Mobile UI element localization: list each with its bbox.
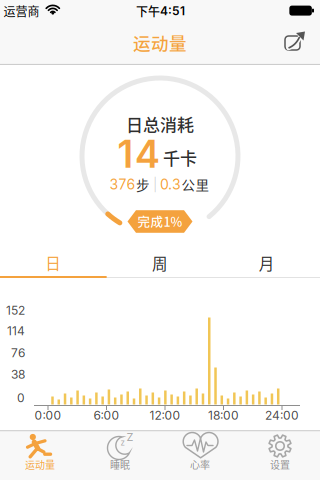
button[interactable]: 心率 bbox=[160, 431, 240, 480]
staticText: 公里 bbox=[181, 175, 209, 194]
staticText: 下午 bbox=[136, 2, 160, 20]
button[interactable]: 月 bbox=[214, 249, 320, 277]
button[interactable] bbox=[279, 27, 311, 59]
staticText: 步 bbox=[136, 175, 150, 194]
staticText: 376 bbox=[109, 176, 135, 193]
staticText: 日 bbox=[45, 252, 61, 274]
staticText: 运动量 bbox=[133, 30, 187, 55]
staticText: 14 bbox=[117, 132, 160, 176]
button[interactable]: 日 bbox=[0, 249, 106, 277]
button[interactable]: 设置 bbox=[240, 431, 320, 480]
staticText: 6:00 bbox=[93, 408, 119, 423]
button[interactable]: z bbox=[80, 431, 160, 480]
staticText: | bbox=[153, 177, 157, 192]
staticText: 76 bbox=[11, 346, 25, 360]
staticText: 0.3 bbox=[160, 176, 181, 193]
staticText: 周 bbox=[152, 252, 168, 274]
staticText: z bbox=[120, 438, 124, 447]
staticText: 睡眠 bbox=[110, 457, 130, 472]
staticText: 0 bbox=[17, 391, 25, 405]
staticText: 心率 bbox=[190, 457, 210, 472]
staticText: 114 bbox=[7, 324, 25, 338]
staticText: 24:00 bbox=[265, 408, 299, 423]
button[interactable]: 周 bbox=[107, 249, 213, 277]
staticText: 152 bbox=[6, 303, 25, 317]
staticText: Z bbox=[126, 430, 133, 443]
staticText: 4:51 bbox=[160, 4, 185, 18]
staticText: 0:00 bbox=[34, 408, 61, 423]
staticText: 18:00 bbox=[208, 408, 239, 423]
staticText: 千卡 bbox=[163, 145, 197, 170]
staticText: 12:00 bbox=[149, 408, 180, 423]
staticText: 运动量 bbox=[25, 457, 55, 472]
staticText: 38 bbox=[11, 367, 25, 382]
staticText: 月 bbox=[259, 252, 275, 274]
button[interactable]: 运动量 bbox=[0, 431, 80, 480]
staticText: 完成1% bbox=[137, 212, 182, 230]
staticText: 日总消耗 bbox=[126, 112, 194, 136]
staticText: 设置 bbox=[270, 457, 290, 472]
staticText: 运营商 bbox=[3, 2, 39, 20]
